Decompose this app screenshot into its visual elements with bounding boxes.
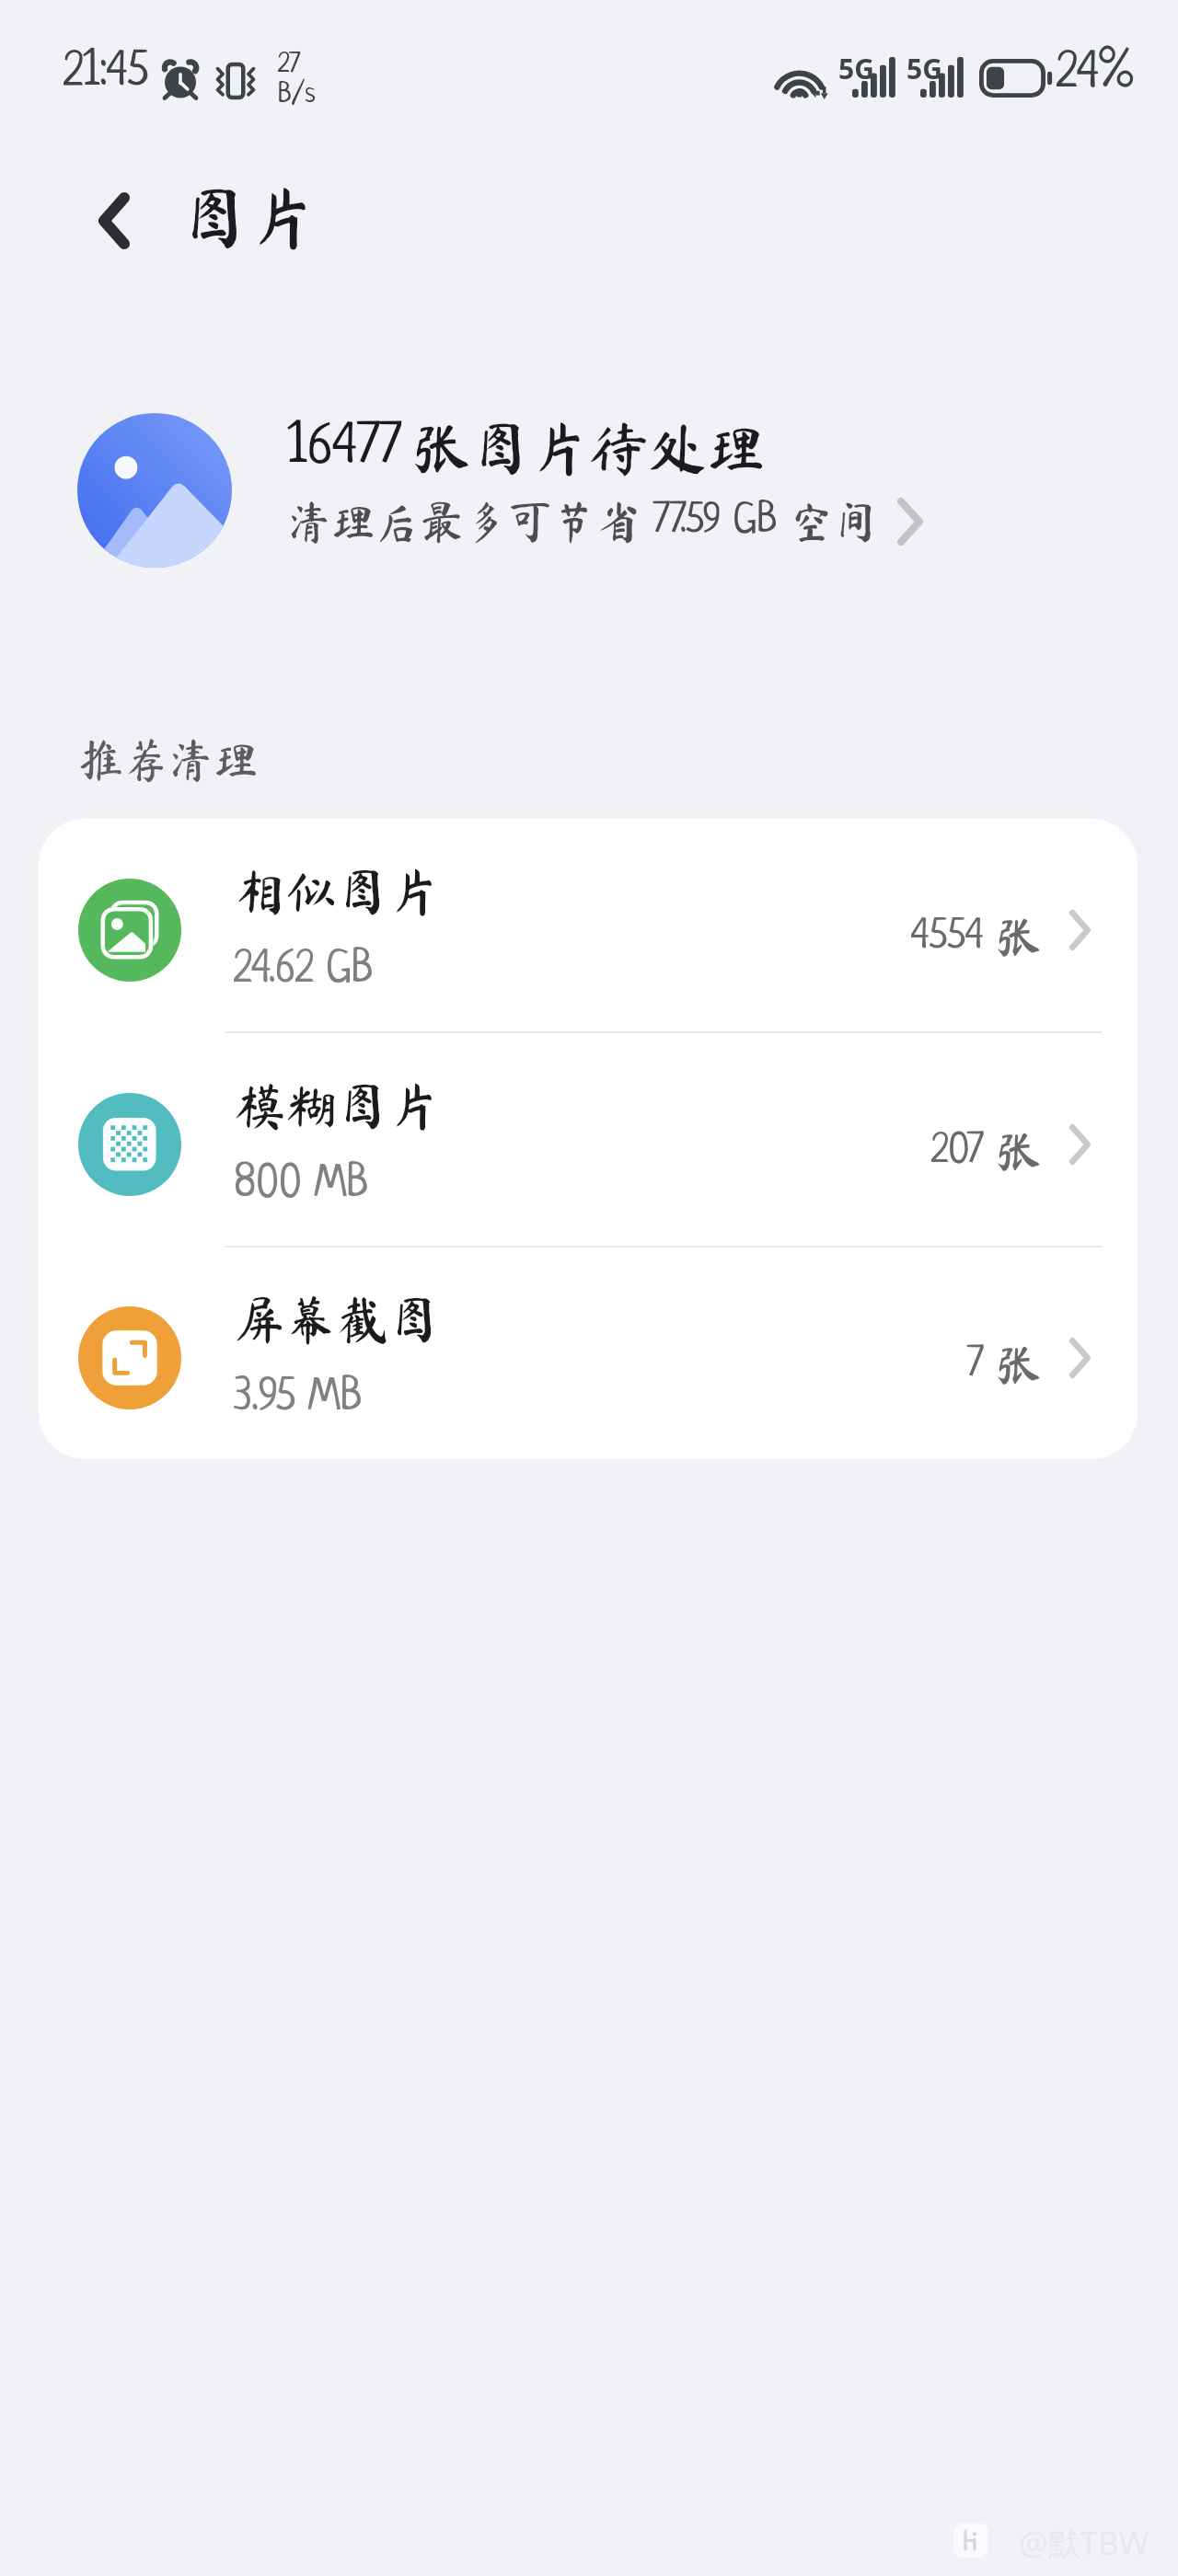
button[interactable]: 模糊图片	[39, 1033, 1138, 1246]
staticText: @默TBW	[1019, 2521, 1149, 2565]
staticText: 清理后最多可节省	[287, 500, 641, 544]
button[interactable]: 屏幕截图	[39, 1248, 1138, 1459]
staticText: 16477	[287, 418, 402, 477]
staticText: 5G	[907, 50, 942, 87]
staticText: 张	[996, 914, 1042, 960]
staticText: 5G	[838, 50, 874, 87]
staticText: 图片	[180, 183, 317, 251]
button[interactable]: 相似图片	[39, 819, 1138, 1031]
staticText: 27	[278, 50, 301, 80]
staticText: 800 MB	[234, 1161, 369, 1209]
button[interactable]: 16477	[77, 381, 1132, 600]
staticText: 张	[996, 1128, 1042, 1174]
staticText: 推荐清理	[78, 737, 260, 782]
staticText: 24.62 GB	[234, 947, 374, 995]
staticText: 模糊图片	[234, 1080, 440, 1132]
staticText: 空间	[790, 500, 879, 544]
staticText: 4554	[911, 915, 996, 960]
staticText: 屏幕截图	[234, 1294, 440, 1345]
staticText: 张图片待处理	[412, 419, 766, 477]
staticText: 21:45	[64, 47, 149, 98]
staticText: 77.59 GB	[641, 500, 790, 544]
button[interactable]: Back	[77, 180, 151, 261]
staticText: 207	[931, 1130, 996, 1174]
staticText: 24%	[1057, 47, 1134, 101]
staticText: 相似图片	[234, 866, 440, 917]
staticText: 7	[967, 1343, 996, 1387]
staticText: 张	[996, 1341, 1042, 1387]
staticText: B/s	[278, 80, 316, 110]
staticText: 3.95 MB	[234, 1374, 363, 1422]
